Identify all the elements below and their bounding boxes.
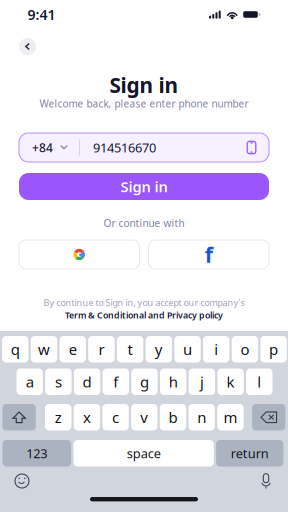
staticText: l (257, 372, 261, 392)
staticText: g (140, 372, 149, 392)
button[interactable]: n (188, 404, 215, 430)
staticText: v (140, 407, 148, 427)
staticText: Sign in (109, 71, 178, 99)
staticText: +84 (32, 139, 53, 156)
staticText: c (112, 407, 119, 427)
button[interactable]: e (59, 336, 86, 362)
staticText: m (223, 407, 237, 427)
button[interactable]: Term & Conditional and Privacy policy (19, 309, 269, 321)
button[interactable]: b (160, 404, 186, 430)
button[interactable]: t (117, 336, 143, 362)
button[interactable]: Continue with Facebook (148, 240, 269, 269)
staticText: Welcome back, please enter phone number (39, 97, 248, 110)
staticText: Term & Conditional and Privacy policy (65, 309, 223, 321)
staticText: o (240, 339, 249, 359)
staticText: Or continue with (103, 216, 184, 230)
button[interactable]: f (103, 368, 129, 395)
staticText: f (113, 372, 118, 392)
button[interactable]: k (217, 368, 244, 395)
staticText: q (11, 339, 20, 359)
staticText: t (128, 339, 133, 359)
staticText: h (169, 372, 178, 392)
button[interactable]: i (203, 336, 229, 362)
button[interactable]: j (189, 368, 215, 395)
staticText: w (38, 339, 50, 359)
button[interactable]: space (73, 440, 214, 466)
button[interactable]: l (246, 368, 272, 395)
staticText: i (214, 339, 218, 359)
staticText: By continue to Sign in, you accept our c… (43, 296, 244, 309)
staticText: b (168, 407, 177, 427)
staticText: a (26, 372, 34, 392)
button[interactable]: a (16, 368, 43, 395)
staticText: x (83, 407, 91, 427)
button[interactable]: c (102, 404, 129, 430)
button[interactable]: 123 (2, 440, 71, 466)
button[interactable]: m (217, 404, 244, 430)
button[interactable]: q (2, 336, 28, 362)
staticText: f (205, 240, 213, 269)
button[interactable]: v (131, 404, 157, 430)
button[interactable]: x (74, 404, 100, 430)
staticText: n (197, 407, 206, 427)
button[interactable]: Emoji keyboard (8, 470, 36, 492)
button[interactable]: return (216, 440, 283, 466)
staticText: 123 (26, 444, 47, 462)
button[interactable]: u (174, 336, 201, 362)
button[interactable]: Continue with Google (19, 240, 139, 269)
button[interactable]: h (160, 368, 186, 395)
button[interactable]: Dictation (252, 470, 280, 492)
button[interactable]: w (31, 336, 57, 362)
staticText: 914516670 (93, 139, 156, 156)
staticText: return (231, 444, 269, 462)
button[interactable]: d (74, 368, 100, 395)
staticText: d (83, 372, 92, 392)
button[interactable]: z (45, 404, 71, 430)
staticText: Sign in (120, 176, 167, 196)
button[interactable]: o (232, 336, 258, 362)
staticText: u (183, 339, 192, 359)
button[interactable]: g (131, 368, 158, 395)
staticText: s (55, 372, 62, 392)
staticText: z (55, 407, 62, 427)
button[interactable]: Delete (252, 404, 285, 430)
button[interactable]: Back (19, 38, 36, 55)
staticText: y (155, 339, 163, 359)
staticText: 9:41 (27, 5, 55, 24)
button[interactable]: Shift (2, 404, 36, 430)
button[interactable]: Sign in (19, 173, 269, 200)
staticText: r (98, 339, 104, 359)
staticText: j (200, 372, 204, 392)
button[interactable]: s (45, 368, 72, 395)
staticText: e (69, 339, 77, 359)
button[interactable]: y (146, 336, 172, 362)
button[interactable]: r (88, 336, 115, 362)
staticText: p (269, 339, 278, 359)
button[interactable]: p (260, 336, 287, 362)
staticText: space (127, 444, 161, 462)
staticText: k (227, 372, 235, 392)
